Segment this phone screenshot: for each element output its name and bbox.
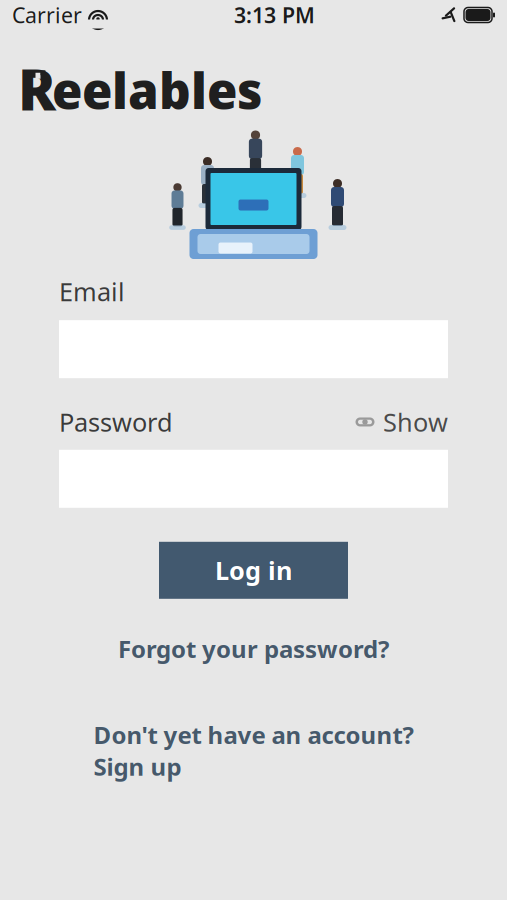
staticText: Forgot your password? — [118, 633, 389, 665]
staticText: R — [18, 52, 56, 126]
staticText: Log in — [215, 553, 292, 587]
staticText: Don't yet have an account? Sign up — [93, 719, 413, 782]
staticText: Email — [59, 274, 125, 308]
button[interactable]: Forgot your password? — [104, 625, 403, 673]
staticText: Carrier — [12, 1, 82, 29]
button[interactable]: Show — [355, 405, 448, 439]
staticText: Password — [59, 405, 173, 439]
staticText: eelables — [52, 57, 263, 122]
button[interactable]: Log in — [159, 542, 348, 599]
button[interactable]: Don't yet have an account? Sign up — [79, 711, 427, 790]
staticText: 3:13 PM — [234, 1, 315, 29]
staticText: Show — [383, 405, 448, 439]
